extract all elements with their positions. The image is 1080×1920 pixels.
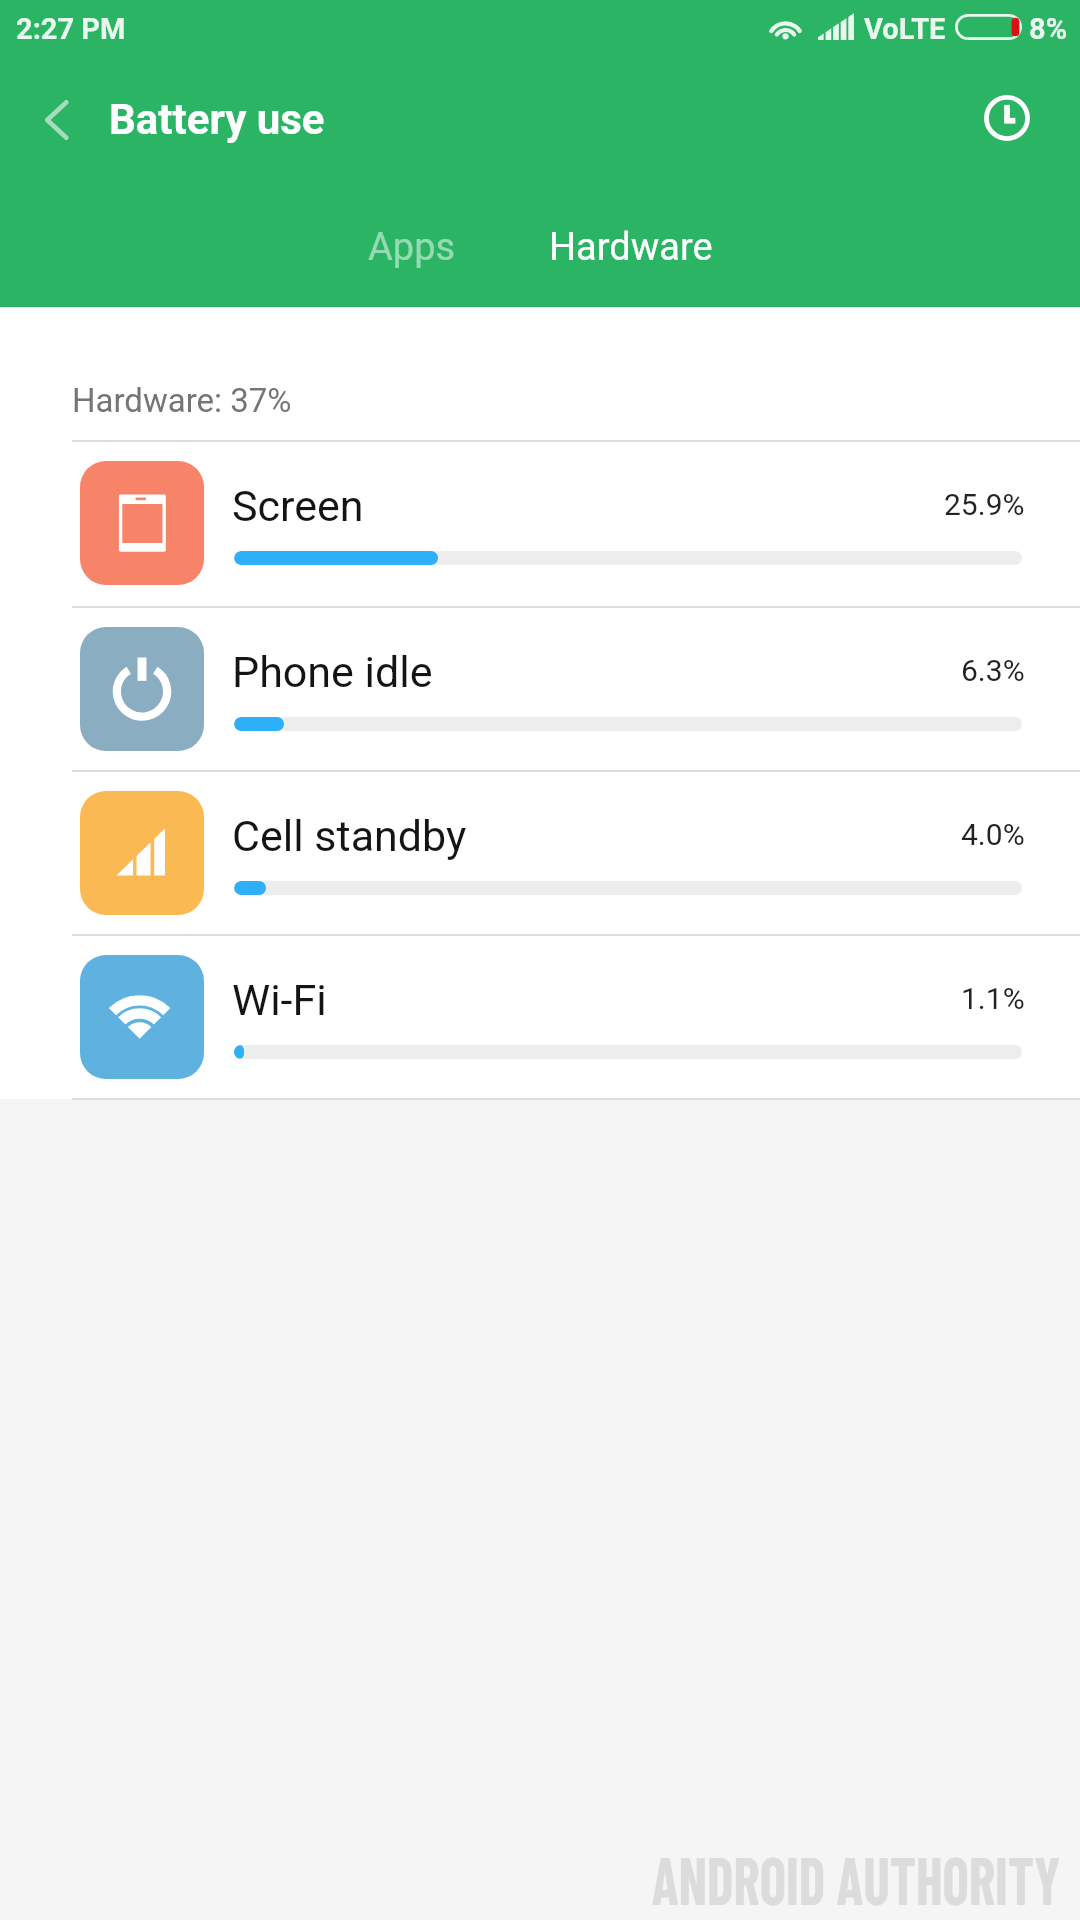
staticText: VoLTE <box>864 12 946 46</box>
button[interactable]: Hardware <box>522 194 740 301</box>
staticText: Battery use <box>109 95 325 144</box>
button[interactable]: Screen <box>0 440 1080 606</box>
staticText: 1.1% <box>961 981 1025 1016</box>
staticText: ANDROID AUTHORITY <box>652 1838 1061 1918</box>
staticText: Cell standby <box>232 811 467 861</box>
button[interactable]: Battery history <box>952 60 1062 180</box>
staticText: 25.9% <box>944 487 1025 522</box>
button[interactable]: Phone idle <box>0 606 1080 770</box>
staticText: Apps <box>368 225 456 270</box>
staticText: 6.3% <box>961 653 1025 688</box>
staticText: 4.0% <box>961 817 1025 852</box>
staticText: Phone idle <box>232 647 433 697</box>
staticText: 2:27 PM <box>16 12 126 46</box>
button[interactable]: Wi-Fi <box>0 934 1080 1098</box>
staticText: Hardware: 37% <box>72 381 292 420</box>
button[interactable]: Apps <box>303 194 521 301</box>
staticText: 8% <box>1029 12 1068 46</box>
staticText: Screen <box>232 481 364 531</box>
button[interactable]: Back <box>0 60 112 180</box>
staticText: Hardware <box>549 225 713 270</box>
staticText: Wi-Fi <box>232 975 327 1025</box>
button[interactable]: Cell standby <box>0 770 1080 934</box>
